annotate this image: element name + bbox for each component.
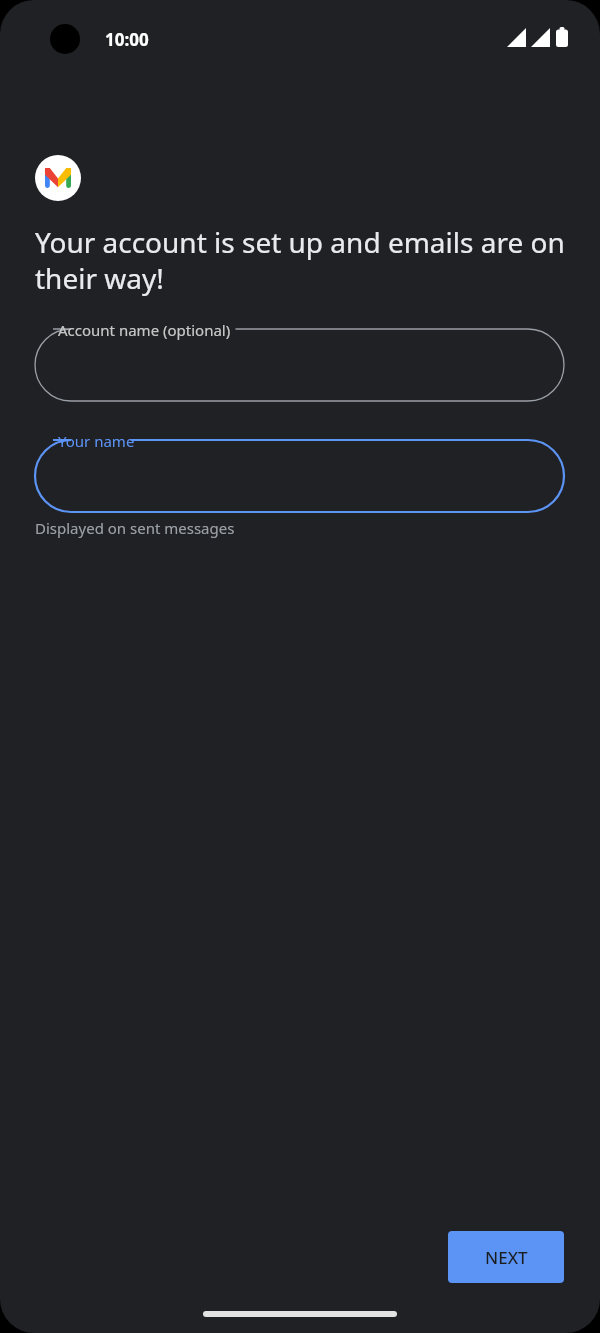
staticText: 10:00 — [105, 28, 149, 51]
button[interactable]: NEXT — [448, 1231, 564, 1283]
staticText: Your account is set up and emails are on… — [35, 223, 570, 297]
button[interactable]: Your name — [35, 430, 564, 512]
staticText: Your name — [58, 431, 135, 451]
staticText: NEXT — [485, 1246, 528, 1269]
staticText: Displayed on sent messages — [35, 518, 235, 538]
staticText: Account name (optional) — [58, 320, 231, 340]
button[interactable]: Account name (optional) — [35, 319, 564, 401]
